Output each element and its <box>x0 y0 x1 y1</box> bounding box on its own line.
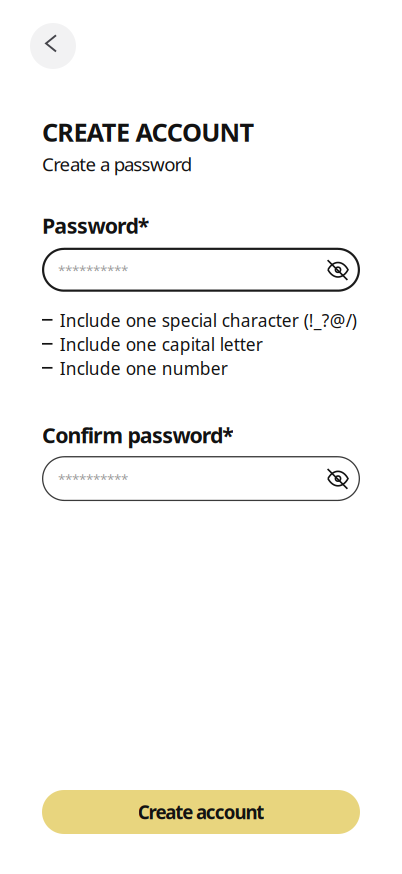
staticText: Password* <box>42 211 150 240</box>
button[interactable]: Password <box>42 248 360 292</box>
staticText: Confirm password* <box>42 421 234 449</box>
button[interactable]: Create account <box>42 790 360 834</box>
button[interactable]: Show password <box>326 250 350 290</box>
staticText: ********** <box>58 470 128 488</box>
staticText: Include one number <box>60 357 228 380</box>
staticText: Create a password <box>42 152 192 176</box>
staticText: Include one special character (!_?@/) <box>60 309 357 332</box>
staticText: CREATE ACCOUNT <box>42 115 255 149</box>
button[interactable]: Show password <box>326 459 350 499</box>
staticText: Create account <box>138 800 264 824</box>
staticText: Include one capital letter <box>60 333 263 356</box>
button[interactable]: Confirm password <box>42 456 360 501</box>
button[interactable]: Back <box>30 23 76 69</box>
staticText: ********** <box>58 261 128 279</box>
